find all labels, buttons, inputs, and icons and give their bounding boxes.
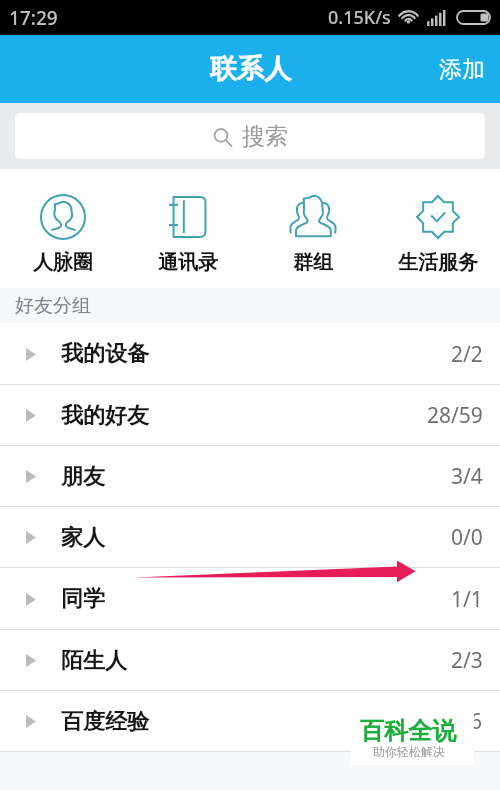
staticText: 人脉圈: [33, 250, 93, 275]
button[interactable]: 搜索: [15, 113, 485, 159]
staticText: 百科全说: [360, 716, 456, 746]
staticText: 0.15K/s: [328, 5, 391, 30]
button[interactable]: 百度经验: [0, 691, 500, 752]
staticText: 2/2: [451, 340, 483, 369]
staticText: 我的好友: [61, 402, 149, 430]
button[interactable]: 朋友: [0, 446, 500, 507]
staticText: 好友分组: [15, 294, 91, 318]
staticText: 我的设备: [61, 340, 149, 368]
staticText: 联系人: [210, 52, 291, 86]
button[interactable]: 生活服务: [375, 169, 500, 288]
button[interactable]: 我的设备: [0, 323, 500, 385]
staticText: 群组: [293, 250, 333, 275]
button[interactable]: 添加: [424, 41, 500, 98]
staticText: 添加: [439, 55, 485, 84]
button[interactable]: 同学: [0, 568, 500, 630]
button[interactable]: 人脉圈: [0, 169, 125, 288]
staticText: 搜索: [242, 122, 288, 151]
staticText: 助你轻松解决: [373, 744, 445, 759]
button[interactable]: 陌生人: [0, 630, 500, 691]
staticText: 3/4: [451, 462, 483, 491]
button[interactable]: 通讯录: [125, 169, 250, 288]
button[interactable]: 群组: [250, 169, 375, 288]
button[interactable]: 我的好友: [0, 385, 500, 446]
staticText: 2/3: [451, 646, 483, 675]
staticText: 生活服务: [398, 250, 478, 275]
staticText: 通讯录: [158, 250, 218, 275]
staticText: 6: [470, 707, 483, 736]
staticText: 28/59: [427, 401, 483, 430]
staticText: 1/1: [451, 585, 483, 614]
staticText: 朋友: [61, 463, 105, 491]
staticText: 家人: [61, 524, 105, 552]
staticText: 同学: [61, 585, 105, 613]
staticText: 陌生人: [61, 647, 127, 675]
staticText: 17:29: [9, 5, 58, 31]
staticText: 百度经验: [61, 708, 149, 736]
staticText: 0/0: [451, 523, 483, 552]
button[interactable]: 家人: [0, 507, 500, 568]
